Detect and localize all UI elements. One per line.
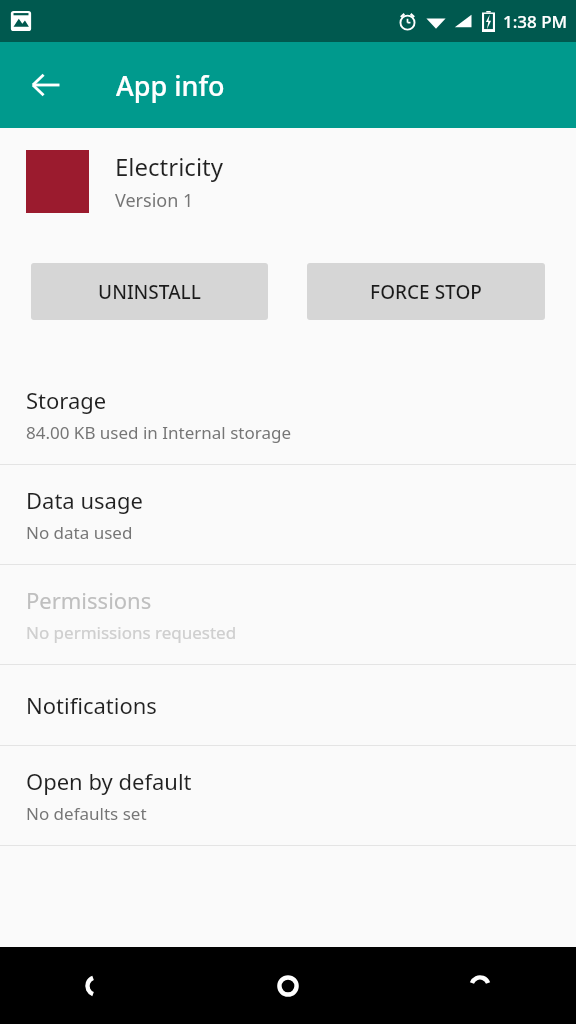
button[interactable]: Back <box>0 947 192 1024</box>
staticText: App info <box>116 67 225 104</box>
staticText: Data usage <box>26 485 143 515</box>
button[interactable]: Notifications <box>0 665 576 745</box>
staticText: 84.00 KB used in Internal storage <box>26 421 291 444</box>
button[interactable]: Storage <box>0 365 576 464</box>
staticText: 1:38 PM <box>503 10 568 33</box>
staticText: FORCE STOP <box>370 279 482 305</box>
button[interactable]: Home <box>192 947 384 1024</box>
button[interactable]: Open by default <box>0 746 576 845</box>
staticText: Electricity <box>115 150 223 183</box>
staticText: Notifications <box>26 690 157 720</box>
staticText: Open by default <box>26 766 192 796</box>
button[interactable]: UNINSTALL <box>31 263 268 320</box>
staticText: No defaults set <box>26 802 147 825</box>
staticText: Storage <box>26 385 107 415</box>
button[interactable]: Data usage <box>0 465 576 564</box>
button[interactable]: Back <box>14 53 78 117</box>
staticText: No data used <box>26 521 133 544</box>
staticText: No permissions requested <box>26 621 237 644</box>
button[interactable]: FORCE STOP <box>307 263 545 320</box>
button[interactable]: Recent apps <box>384 947 576 1024</box>
staticText: Permissions <box>26 585 152 615</box>
button[interactable]: Permissions <box>0 565 576 664</box>
staticText: UNINSTALL <box>98 279 201 305</box>
staticText: Version 1 <box>115 188 194 213</box>
